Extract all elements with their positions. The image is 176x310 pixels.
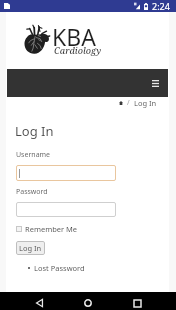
staticText: 2:24 <box>152 0 170 12</box>
button[interactable]: Home <box>119 101 123 105</box>
staticText: Log In <box>19 243 42 253</box>
staticText: / <box>127 98 130 108</box>
staticText: Log In <box>15 122 54 140</box>
staticText: Password <box>16 187 48 197</box>
button[interactable]: Lost Password <box>34 263 85 273</box>
button[interactable] <box>16 202 116 217</box>
button[interactable]: Recents <box>127 294 147 310</box>
button[interactable]: Log In <box>16 241 45 255</box>
button[interactable]: Remember Me <box>16 224 78 234</box>
staticText: Username <box>16 150 51 160</box>
button[interactable]: Menu <box>148 76 162 90</box>
button[interactable]: Back <box>29 294 49 310</box>
staticText: Remember Me <box>25 224 78 234</box>
button[interactable]: Menu <box>7 69 168 97</box>
staticText: KBA <box>52 21 96 52</box>
button[interactable] <box>16 165 116 181</box>
button[interactable]: Home <box>78 294 98 310</box>
button[interactable]: Log In <box>134 98 157 108</box>
staticText: Cardiology <box>54 44 102 56</box>
